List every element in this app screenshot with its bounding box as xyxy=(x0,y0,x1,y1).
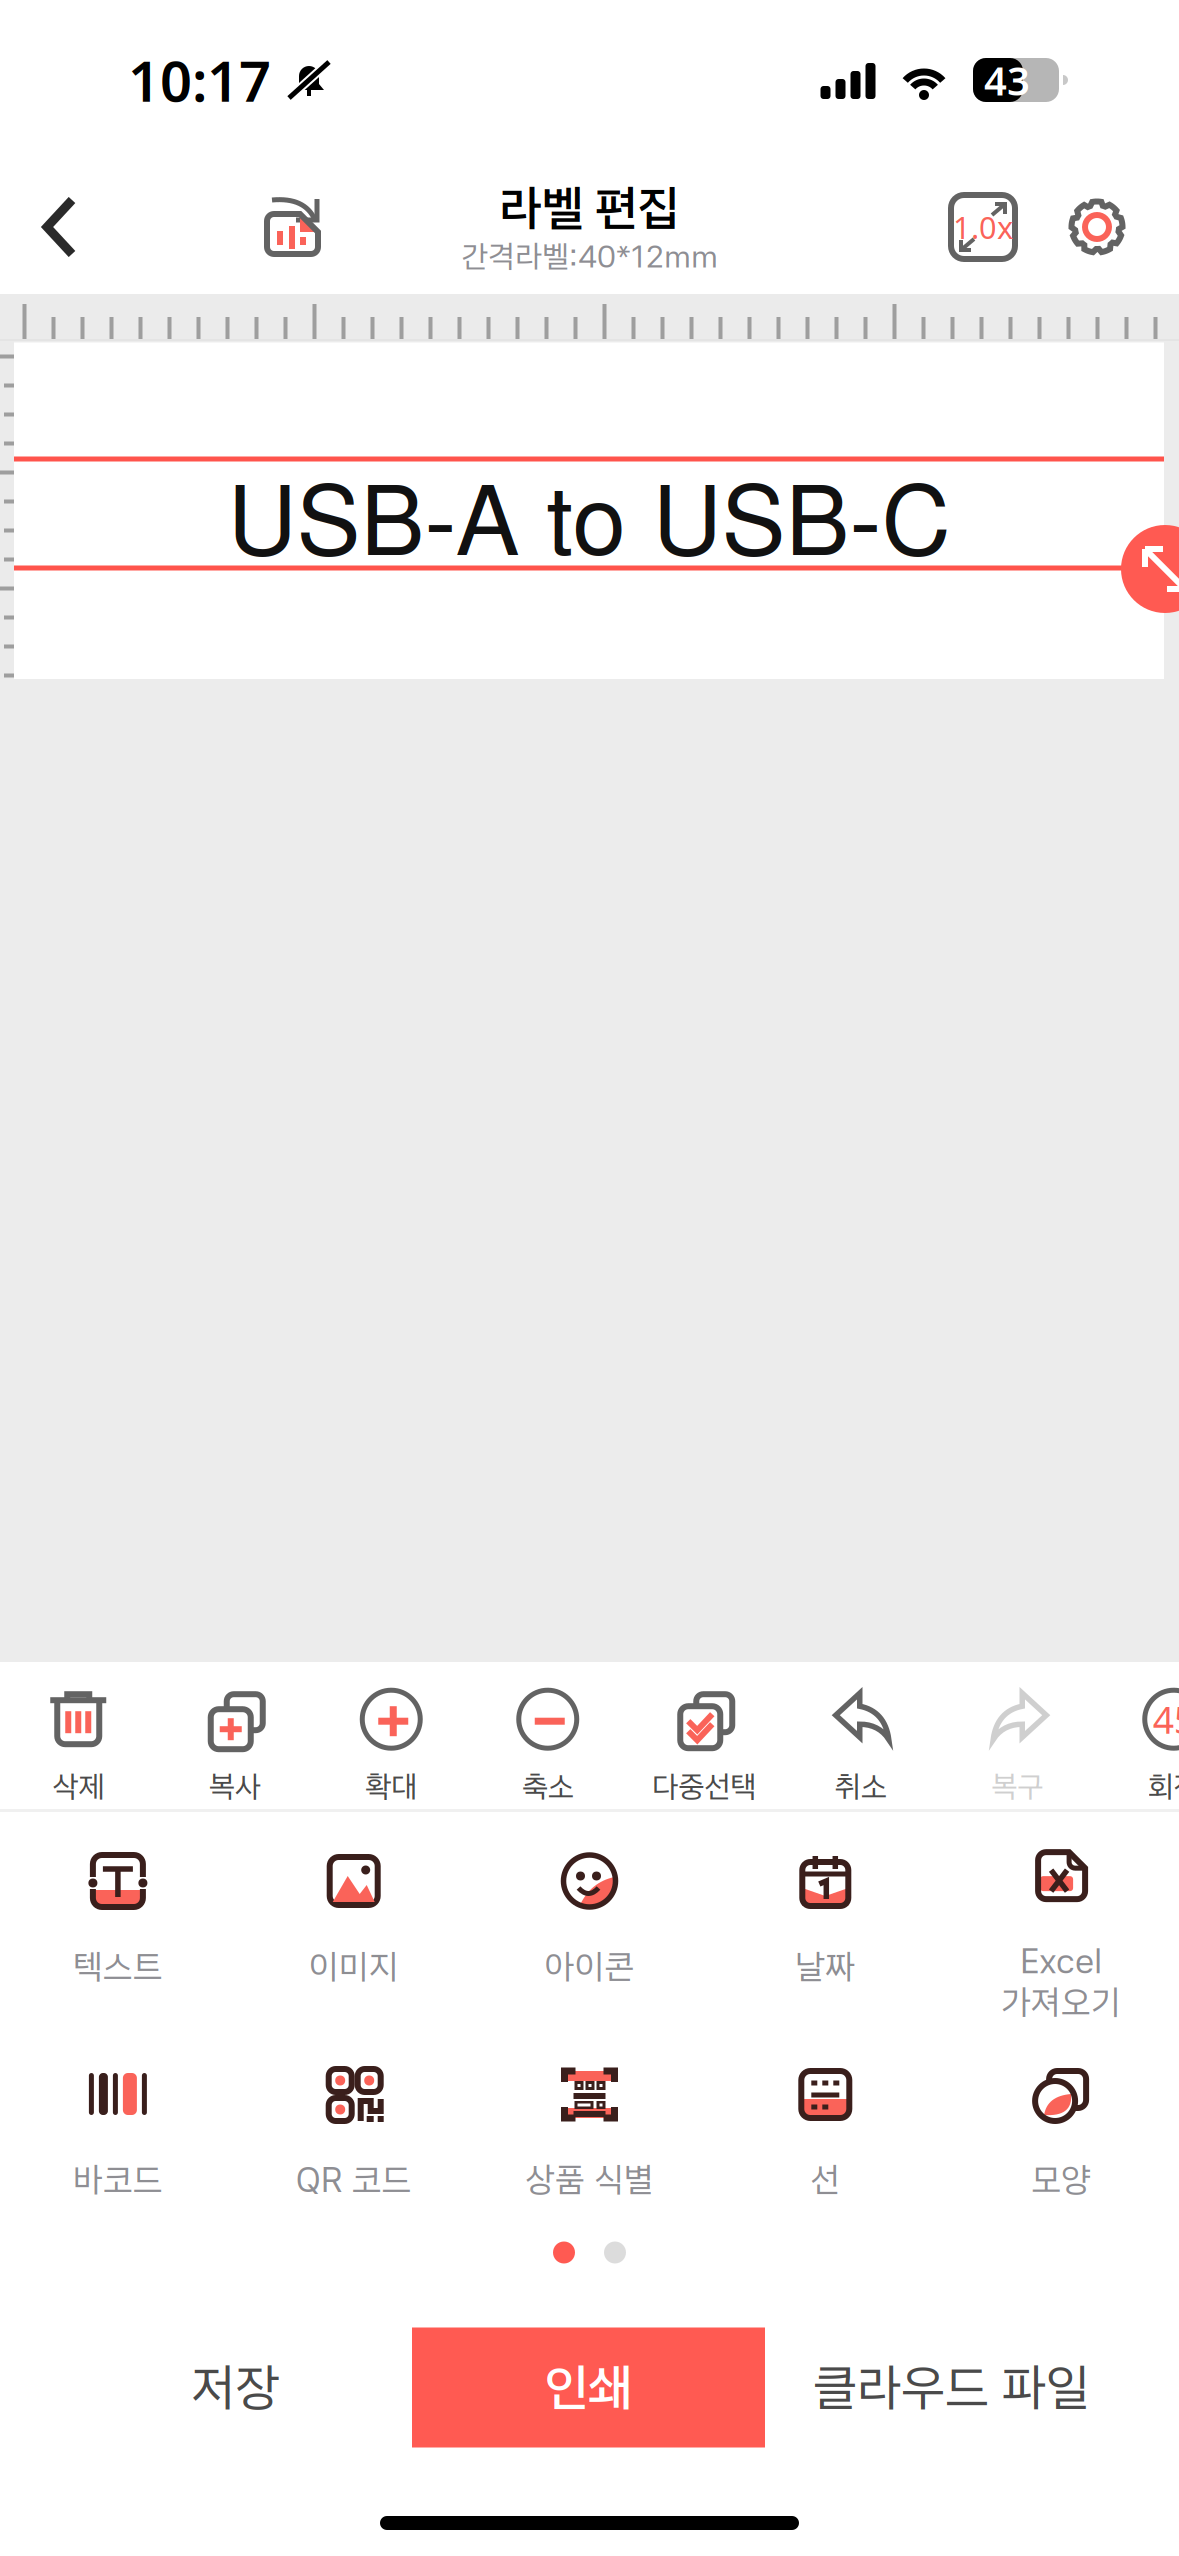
staticText: 45 xyxy=(1153,1694,1179,1744)
button[interactable]: 다중선택 xyxy=(626,1662,782,1809)
staticText: 43 xyxy=(984,53,1030,106)
staticText: 클라우드 파일 xyxy=(813,2357,1090,2418)
staticText: USB-A to USB-C xyxy=(227,445,950,582)
staticText: 인쇄 xyxy=(544,2357,632,2418)
button[interactable]: 인쇄 xyxy=(412,2327,765,2447)
button[interactable]: 저장 xyxy=(59,2327,412,2447)
button[interactable]: 날짜 xyxy=(707,1812,943,2025)
button[interactable]: Back xyxy=(0,160,120,294)
staticText: 회전 xyxy=(1148,1768,1179,1805)
button[interactable]: QR 코드 xyxy=(236,2025,472,2238)
button[interactable]: 축소 xyxy=(469,1662,626,1809)
staticText: 날짜 xyxy=(795,1946,855,1987)
staticText: 10:17 xyxy=(128,43,271,117)
button[interactable]: Settings xyxy=(1015,160,1179,294)
staticText: 다중선택 xyxy=(652,1768,756,1805)
button[interactable]: 취소 xyxy=(782,1662,939,1809)
button[interactable]: Excel xyxy=(943,1812,1179,2025)
button[interactable]: 복구 xyxy=(939,1662,1095,1809)
button[interactable]: 삭제 xyxy=(0,1662,156,1809)
staticText: 저장 xyxy=(191,2357,279,2418)
staticText: 이미지 xyxy=(309,1946,399,1987)
staticText: 1.0x xyxy=(953,207,1013,247)
staticText: Excel xyxy=(1020,1940,1102,1981)
button[interactable]: 모양 xyxy=(943,2025,1179,2238)
staticText: 복사 xyxy=(209,1768,261,1805)
button[interactable]: 바코드 xyxy=(0,2025,236,2238)
button[interactable]: 클라우드 파일 xyxy=(765,2327,1138,2447)
button[interactable]: 상품 식별 xyxy=(472,2025,707,2238)
button[interactable]: 아이콘 xyxy=(472,1812,707,2025)
staticText: 가져오기 xyxy=(1001,1981,1121,2023)
staticText: QR 코드 xyxy=(296,2159,412,2200)
button[interactable]: Rotate label xyxy=(120,160,458,294)
staticText: 텍스트 xyxy=(73,1946,163,1987)
staticText: 축소 xyxy=(522,1768,574,1805)
staticText: 모양 xyxy=(1031,2159,1091,2200)
staticText: 라벨 편집 xyxy=(499,179,679,238)
button[interactable]: 선 xyxy=(707,2025,943,2238)
staticText: 상품 식별 xyxy=(525,2159,654,2200)
button[interactable]: 이미지 xyxy=(236,1812,472,2025)
staticText: 선 xyxy=(810,2159,840,2200)
button[interactable]: 45 xyxy=(1095,1662,1179,1809)
staticText: 아이콘 xyxy=(544,1946,634,1987)
button[interactable]: 확대 xyxy=(313,1662,469,1809)
button[interactable]: 텍스트 xyxy=(0,1812,236,2025)
staticText: 취소 xyxy=(835,1768,887,1805)
button[interactable]: 복사 xyxy=(156,1662,313,1809)
staticText: 간격라벨:40*12mm xyxy=(461,238,718,275)
button[interactable]: Zoom level 1.0x xyxy=(885,160,1015,294)
staticText: 바코드 xyxy=(73,2159,163,2200)
staticText: 삭제 xyxy=(52,1768,104,1805)
staticText: 복구 xyxy=(991,1768,1043,1805)
staticText: 확대 xyxy=(365,1768,417,1805)
